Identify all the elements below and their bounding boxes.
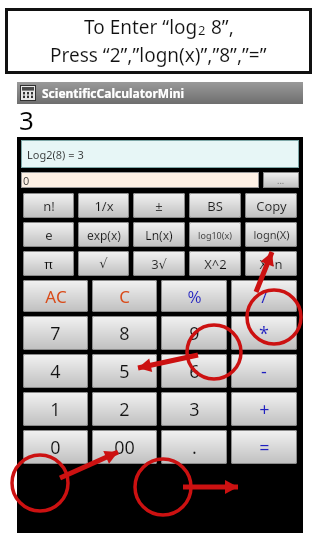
- button[interactable]: 8: [92, 316, 157, 350]
- button[interactable]: 4: [23, 354, 88, 388]
- button[interactable]: App icon: [17, 82, 303, 104]
- button[interactable]: -: [231, 354, 297, 388]
- button[interactable]: AC: [23, 280, 88, 312]
- staticText: Copy: [256, 197, 287, 215]
- staticText: 1: [50, 397, 61, 422]
- button[interactable]: 5: [92, 354, 157, 388]
- other: App icon: [20, 85, 36, 101]
- button[interactable]: Ln(x): [133, 222, 185, 247]
- button[interactable]: 7: [23, 316, 88, 350]
- button[interactable]: Copy: [245, 193, 297, 218]
- staticText: π: [44, 255, 53, 273]
- staticText: 8”,: [206, 14, 234, 40]
- button[interactable]: 1/x: [78, 193, 129, 218]
- button[interactable]: 3: [161, 392, 227, 426]
- staticText: Ln(x): [145, 227, 173, 243]
- button[interactable]: π: [23, 251, 74, 276]
- staticText: 4: [50, 359, 61, 384]
- staticText: 0: [23, 173, 30, 188]
- button[interactable]: C: [92, 280, 157, 312]
- staticText: exp(x): [87, 227, 121, 243]
- staticText: Press “2”,”logn(x)”,”8”,”=”: [50, 42, 267, 68]
- button[interactable]: 6: [161, 354, 227, 388]
- staticText: Log2(8) = 3: [27, 147, 84, 162]
- button[interactable]: log10(x): [189, 222, 241, 247]
- staticText: 5: [119, 359, 130, 384]
- button[interactable]: X^n: [245, 251, 297, 276]
- button[interactable]: √: [78, 251, 129, 276]
- staticText: X^2: [204, 255, 227, 273]
- button[interactable]: 0: [23, 430, 88, 464]
- button[interactable]: +: [231, 392, 297, 426]
- staticText: 0: [50, 435, 61, 460]
- staticText: ScientificCalculatorMini: [42, 85, 185, 101]
- staticText: To Enter “log: [84, 14, 198, 40]
- staticText: 3: [19, 102, 34, 135]
- staticText: 7: [50, 321, 61, 346]
- staticText: BS: [207, 197, 223, 215]
- staticText: 6: [189, 359, 200, 384]
- staticText: /: [261, 285, 268, 308]
- button[interactable]: X^2: [189, 251, 241, 276]
- staticText: .: [192, 435, 197, 460]
- staticText: +: [259, 397, 270, 422]
- button[interactable]: =: [231, 430, 297, 464]
- staticText: 2: [119, 397, 130, 422]
- button[interactable]: e: [23, 222, 74, 247]
- staticText: -: [261, 359, 267, 384]
- button[interactable]: n!: [23, 193, 74, 218]
- button[interactable]: .: [161, 430, 227, 464]
- button[interactable]: More options: [263, 172, 299, 188]
- button[interactable]: BS: [189, 193, 241, 218]
- staticText: 2: [198, 21, 206, 39]
- button[interactable]: 0: [21, 172, 259, 188]
- button[interactable]: 3√: [133, 251, 185, 276]
- button[interactable]: Log2(8) = 3: [21, 140, 299, 168]
- staticText: e: [45, 226, 53, 244]
- staticText: *: [259, 321, 269, 346]
- staticText: 3: [189, 397, 200, 422]
- staticText: X^n: [259, 255, 283, 273]
- button[interactable]: logn(X): [245, 222, 297, 247]
- button[interactable]: 1: [23, 392, 88, 426]
- staticText: 3√: [151, 255, 167, 273]
- button[interactable]: 00: [92, 430, 157, 464]
- staticText: =: [259, 435, 270, 460]
- staticText: 9: [189, 321, 200, 346]
- staticText: logn(X): [253, 227, 290, 242]
- button[interactable]: /: [231, 280, 297, 312]
- staticText: n!: [43, 197, 55, 215]
- staticText: log10(x): [198, 229, 232, 241]
- staticText: 1/x: [94, 197, 114, 215]
- staticText: √: [99, 256, 108, 271]
- staticText: 8: [119, 321, 130, 346]
- staticText: C: [119, 285, 130, 308]
- button[interactable]: exp(x): [78, 222, 129, 247]
- staticText: %: [187, 285, 202, 308]
- button[interactable]: %: [161, 280, 227, 312]
- button[interactable]: *: [231, 316, 297, 350]
- staticText: AC: [45, 285, 67, 308]
- button[interactable]: ±: [133, 193, 185, 218]
- button[interactable]: 2: [92, 392, 157, 426]
- staticText: ...: [277, 174, 285, 186]
- staticText: ±: [155, 197, 163, 215]
- button[interactable]: 9: [161, 316, 227, 350]
- staticText: 00: [114, 435, 135, 460]
